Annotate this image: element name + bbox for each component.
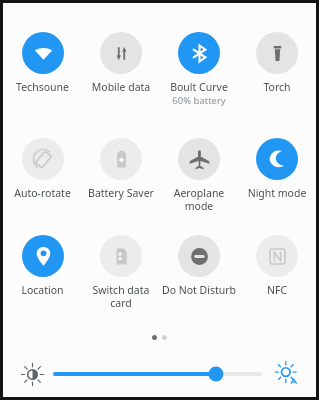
staticText: Techsoune (4, 80, 81, 94)
staticText: Torch (239, 80, 315, 94)
button[interactable]: Do Not Disturb (160, 235, 238, 297)
button[interactable]: Techsoune (3, 32, 82, 94)
button[interactable]: Auto brightness (270, 357, 304, 391)
button[interactable]: Brightness slider (55, 361, 260, 387)
button[interactable]: Location (3, 235, 82, 297)
button[interactable]: Torch (238, 32, 316, 94)
button[interactable]: NFC (238, 235, 316, 297)
button[interactable]: Battery Saver (82, 138, 160, 200)
button[interactable]: Aeroplane mode (160, 138, 238, 213)
staticText: Boult Curve (161, 80, 237, 94)
staticText: 60% battery (161, 94, 237, 107)
staticText: Auto-rotate (4, 186, 81, 200)
staticText: Battery Saver (83, 186, 159, 200)
staticText: Mobile data (83, 80, 159, 94)
button[interactable]: Mobile data (82, 32, 160, 94)
staticText: Do Not Disturb (161, 283, 237, 297)
button[interactable]: Boult Curve (160, 32, 238, 107)
button[interactable]: Auto-rotate (3, 138, 82, 200)
button[interactable]: Lower brightness (15, 357, 49, 391)
staticText: NFC (239, 283, 315, 297)
staticText: Aeroplane mode (161, 186, 237, 213)
button[interactable]: Night mode (238, 138, 316, 200)
staticText: Night mode (239, 186, 315, 200)
button[interactable]: Switch data card (82, 235, 160, 310)
staticText: Location (4, 283, 81, 297)
staticText: Switch data card (83, 283, 159, 310)
